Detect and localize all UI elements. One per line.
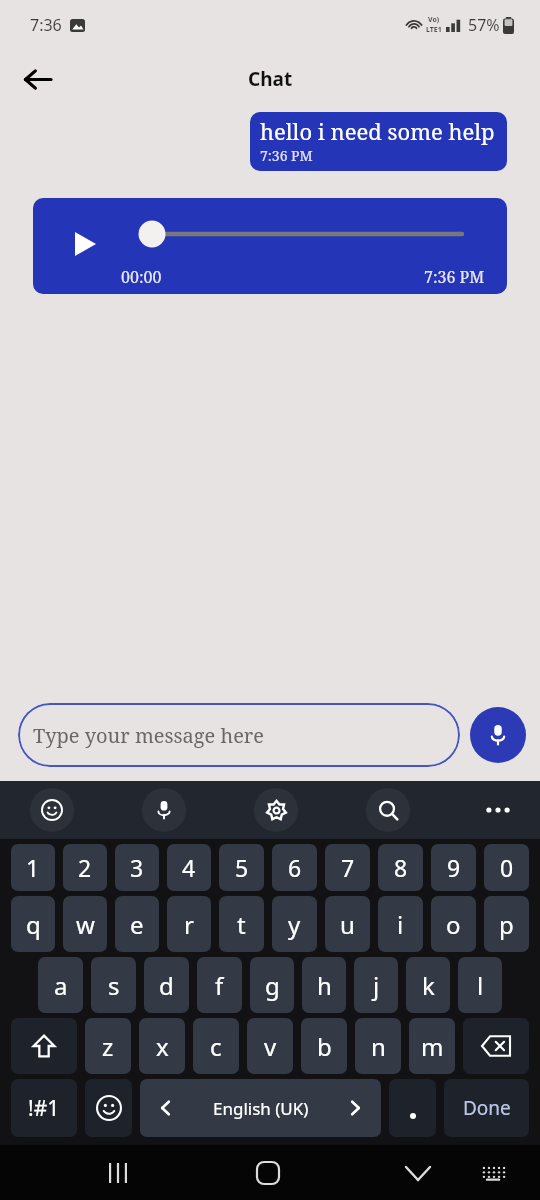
staticText: i — [397, 908, 404, 941]
button[interactable]: Emoji — [85, 1079, 132, 1137]
button[interactable]: 9 — [431, 844, 476, 891]
button[interactable]: Done — [444, 1079, 529, 1137]
button[interactable]: 8 — [378, 844, 423, 891]
staticText: Vo) — [428, 15, 440, 25]
button[interactable]: n — [355, 1018, 401, 1074]
button[interactable]: 7 — [325, 844, 370, 891]
button[interactable]: Change keyboard — [470, 1149, 518, 1197]
button[interactable]: hello i need some help — [250, 112, 507, 171]
button[interactable]: w — [63, 896, 107, 952]
staticText: 5 — [235, 852, 249, 883]
button[interactable]: Hide keyboard — [394, 1149, 442, 1197]
button[interactable]: s — [91, 957, 136, 1013]
staticText: z — [102, 1030, 114, 1063]
staticText: !#1 — [28, 1094, 60, 1123]
button[interactable]: x — [139, 1018, 185, 1074]
staticText: 0 — [500, 852, 514, 883]
button[interactable]: m — [409, 1018, 455, 1074]
button[interactable]: v — [247, 1018, 293, 1074]
button[interactable]: j — [354, 957, 398, 1013]
button[interactable]: u — [325, 896, 370, 952]
button[interactable]: i — [378, 896, 423, 952]
staticText: r — [184, 908, 194, 941]
button[interactable]: Period — [389, 1079, 436, 1137]
staticText: English (UK) — [213, 1097, 309, 1120]
button[interactable]: Voice input — [142, 788, 186, 832]
staticText: g — [265, 969, 280, 1002]
button[interactable]: e — [115, 896, 159, 952]
staticText: 00:00 — [121, 266, 162, 288]
staticText: u — [340, 908, 355, 941]
staticText: 6 — [288, 852, 302, 883]
button[interactable]: r — [167, 896, 211, 952]
button[interactable]: g — [250, 957, 294, 1013]
button[interactable]: Record voice message — [470, 707, 526, 763]
staticText: hello i need some help — [260, 116, 495, 146]
button[interactable]: o — [431, 896, 476, 952]
button[interactable]: f — [197, 957, 242, 1013]
button[interactable]: Home — [244, 1149, 292, 1197]
button[interactable]: Backspace — [463, 1018, 529, 1074]
button[interactable]: a — [38, 957, 83, 1013]
button[interactable]: 5 — [219, 844, 264, 891]
button[interactable]: c — [193, 1018, 239, 1074]
button[interactable]: English (UK) — [140, 1079, 381, 1137]
staticText: n — [371, 1030, 386, 1063]
button[interactable]: 3 — [115, 844, 159, 891]
button[interactable]: y — [272, 896, 317, 952]
staticText: l — [477, 969, 484, 1002]
staticText: Done — [463, 1095, 511, 1121]
button[interactable]: Back — [13, 55, 61, 103]
staticText: 4 — [182, 852, 196, 883]
button[interactable]: b — [301, 1018, 347, 1074]
staticText: h — [317, 969, 332, 1002]
staticText: p — [499, 908, 514, 941]
staticText: v — [264, 1030, 277, 1063]
staticText: Chat — [248, 66, 293, 92]
staticText: t — [237, 908, 246, 941]
button[interactable]: k — [406, 957, 450, 1013]
button[interactable]: Settings — [254, 788, 298, 832]
button[interactable]: 2 — [63, 844, 107, 891]
button[interactable]: More options — [478, 790, 518, 830]
staticText: j — [373, 969, 380, 1002]
button[interactable]: h — [302, 957, 346, 1013]
staticText: Type your message here — [33, 722, 264, 749]
staticText: m — [421, 1030, 444, 1063]
staticText: a — [54, 969, 68, 1002]
button[interactable]: Type your message here — [18, 703, 460, 767]
staticText: 57% — [468, 14, 500, 36]
button[interactable]: p — [484, 896, 529, 952]
staticText: LTE1 — [426, 25, 442, 35]
staticText: o — [446, 908, 461, 941]
button[interactable]: t — [219, 896, 264, 952]
staticText: 3 — [130, 852, 144, 883]
staticText: 9 — [447, 852, 461, 883]
staticText: x — [156, 1030, 169, 1063]
button[interactable]: 1 — [11, 844, 55, 891]
staticText: d — [159, 969, 174, 1002]
button[interactable]: 0 — [484, 844, 529, 891]
button[interactable]: Emoji — [30, 788, 74, 832]
staticText: 2 — [78, 852, 92, 883]
button[interactable]: q — [11, 896, 55, 952]
staticText: b — [317, 1030, 332, 1063]
button[interactable]: Play — [75, 232, 96, 256]
button[interactable]: z — [85, 1018, 131, 1074]
button[interactable]: d — [144, 957, 189, 1013]
staticText: f — [215, 969, 224, 1002]
staticText: k — [422, 969, 435, 1002]
button[interactable]: !#1 — [11, 1079, 77, 1137]
button[interactable]: Recent apps — [94, 1149, 142, 1197]
staticText: 7:36 — [30, 14, 62, 36]
staticText: 1 — [26, 852, 40, 883]
button[interactable]: Play — [33, 198, 507, 294]
button[interactable]: Search — [366, 788, 410, 832]
staticText: 7:36 PM — [424, 266, 485, 288]
button[interactable]: 4 — [167, 844, 211, 891]
button[interactable]: 6 — [272, 844, 317, 891]
button[interactable]: l — [458, 957, 502, 1013]
staticText: e — [130, 908, 144, 941]
staticText: q — [26, 908, 41, 941]
button[interactable]: Shift — [11, 1018, 77, 1074]
